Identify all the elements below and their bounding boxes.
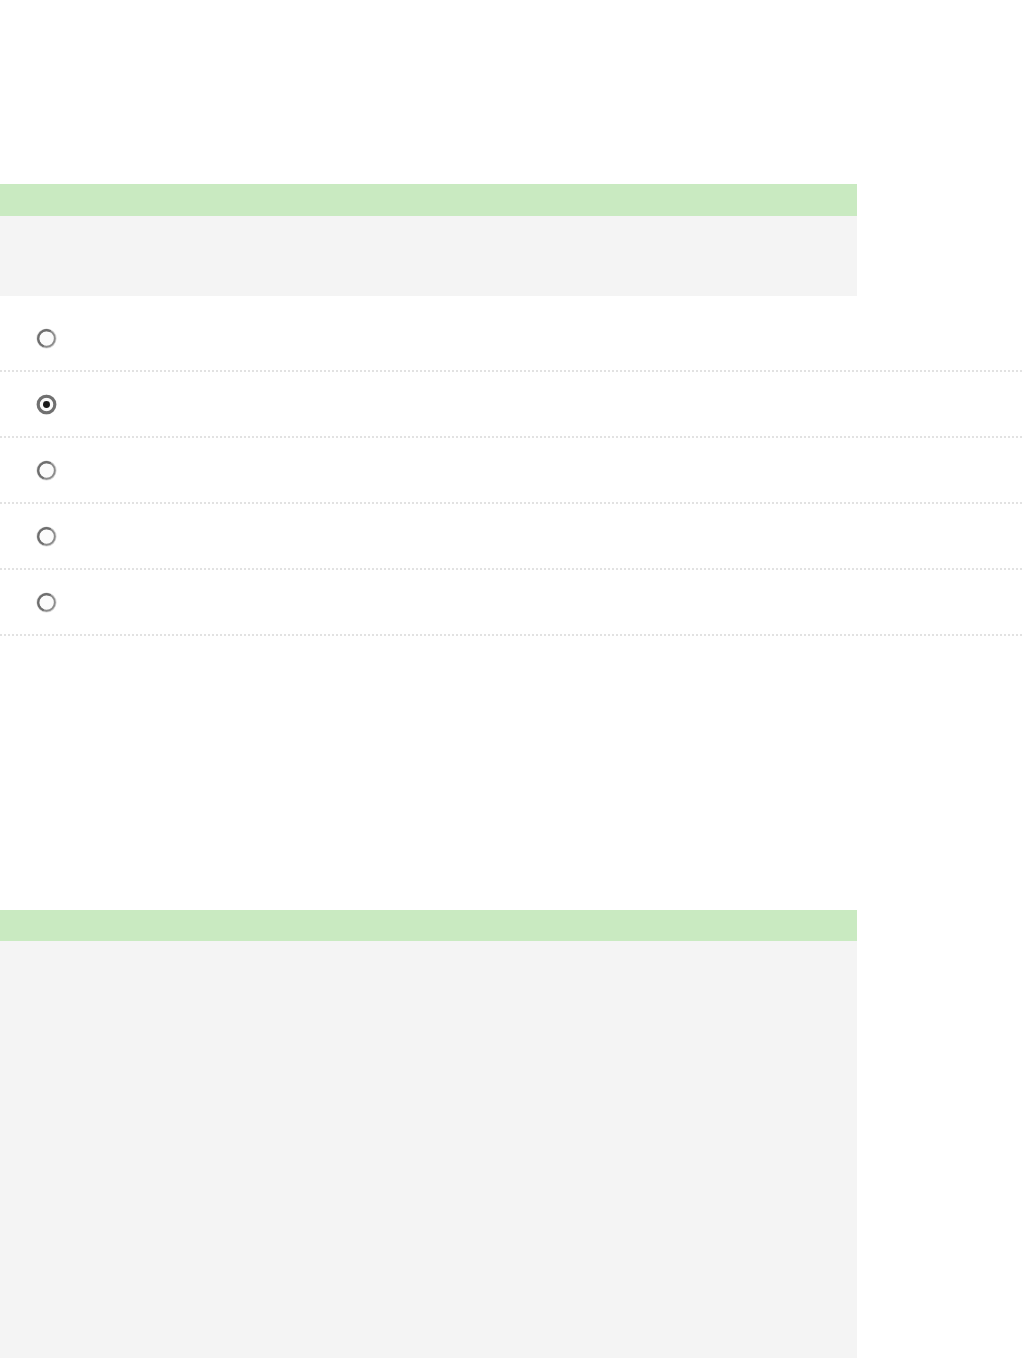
button[interactable]: Option 2 bbox=[0, 371, 1024, 437]
button[interactable]: Option 4 bbox=[0, 503, 1024, 569]
button[interactable]: Option 3 bbox=[0, 437, 1024, 503]
button[interactable]: Option 1 bbox=[0, 305, 1024, 371]
button[interactable]: Option 5 bbox=[0, 569, 1024, 635]
